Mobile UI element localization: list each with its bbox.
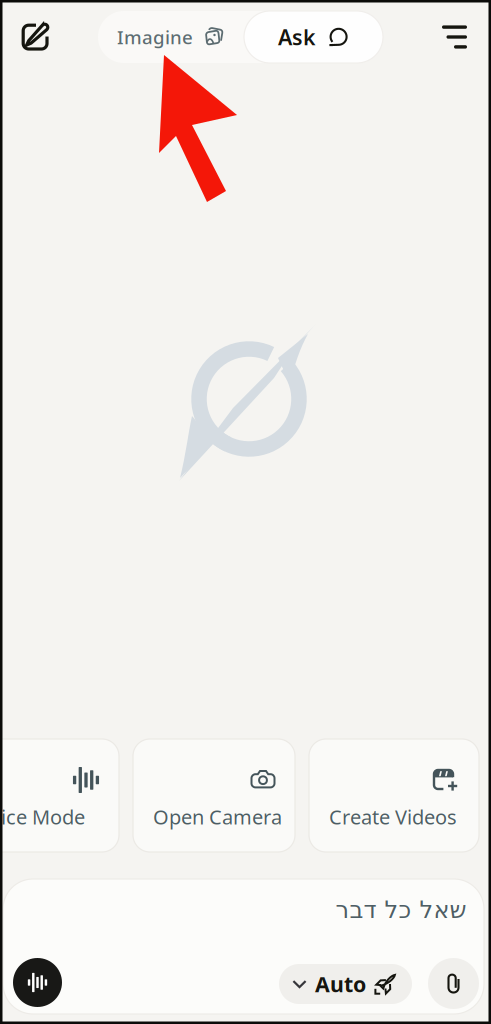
button[interactable]: Voice mode [13,958,62,1007]
staticText: Open Camera [153,803,282,830]
button[interactable]: Auto [279,964,412,1004]
button[interactable]: Imagine [98,11,244,63]
staticText: Ask [278,23,316,51]
button[interactable]: Create Videos [309,739,479,852]
staticText: Auto [315,970,366,998]
button[interactable]: Open Camera [133,739,295,852]
button[interactable]: Attach [428,958,479,1009]
staticText: Create Videos [329,803,457,830]
button[interactable]: Ask [244,11,383,63]
button[interactable]: New chat [12,14,58,60]
button[interactable]: Voice Mode [0,739,119,852]
staticText: Imagine [117,25,193,49]
button[interactable]: Menu [423,14,467,60]
staticText: שאל כל דבר [335,896,466,923]
staticText: Voice Mode [0,803,85,830]
